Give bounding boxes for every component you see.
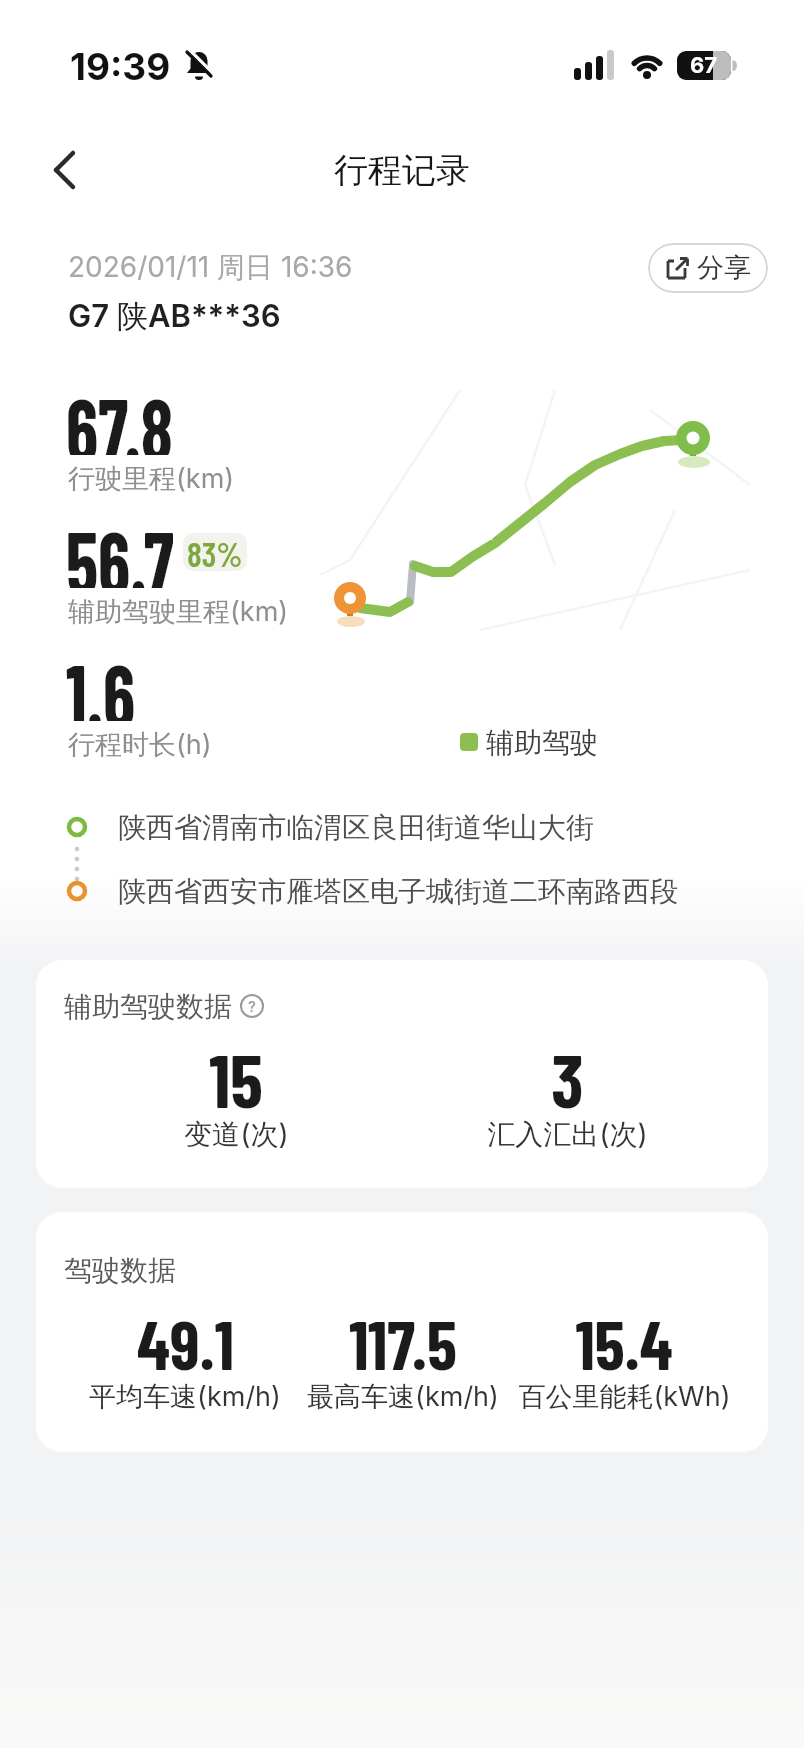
staticText: 83% [187,533,243,571]
staticText: 67 [690,52,718,79]
staticText: 辅助驾驶里程(km) [68,595,289,629]
staticText: 行程时长(h) [68,728,212,762]
staticText: 最高车速(km/h) [307,1380,499,1414]
staticText: 56.7 [66,508,174,588]
staticText: 19:39 [70,44,171,88]
staticText: 行程记录 [334,149,470,192]
staticText: 分享 [697,251,751,285]
staticText: 67.8 [66,375,173,455]
button[interactable]: 分享 [648,243,768,293]
staticText: 辅助驾驶数据 [64,989,232,1024]
staticText: 辅助驾驶 [486,725,598,760]
staticText: G7 陕AB***36 [68,297,281,336]
staticText: 15.4 [575,1302,673,1384]
staticText: 变道(次) [184,1117,289,1152]
staticText: 2026/01/11 周日 16:36 [68,250,353,285]
staticText: 3 [551,1034,584,1123]
staticText: 陕西省渭南市临渭区良田街道华山大街 [118,810,594,845]
staticText: 117.5 [349,1302,457,1384]
staticText: 百公里能耗(kWh) [518,1380,731,1414]
staticText: ? [248,997,256,1015]
staticText: 陕西省西安市雁塔区电子城街道二环南路西段 [118,874,678,909]
staticText: 15 [209,1034,263,1123]
staticText: 行驶里程(km) [68,462,235,496]
staticText: 平均车速(km/h) [89,1380,281,1414]
staticText: 汇入汇出(次) [487,1117,648,1152]
staticText: 49.1 [137,1302,234,1384]
staticText: 1.6 [66,641,136,721]
button[interactable] [48,148,84,192]
staticText: 驾驶数据 [64,1253,176,1288]
